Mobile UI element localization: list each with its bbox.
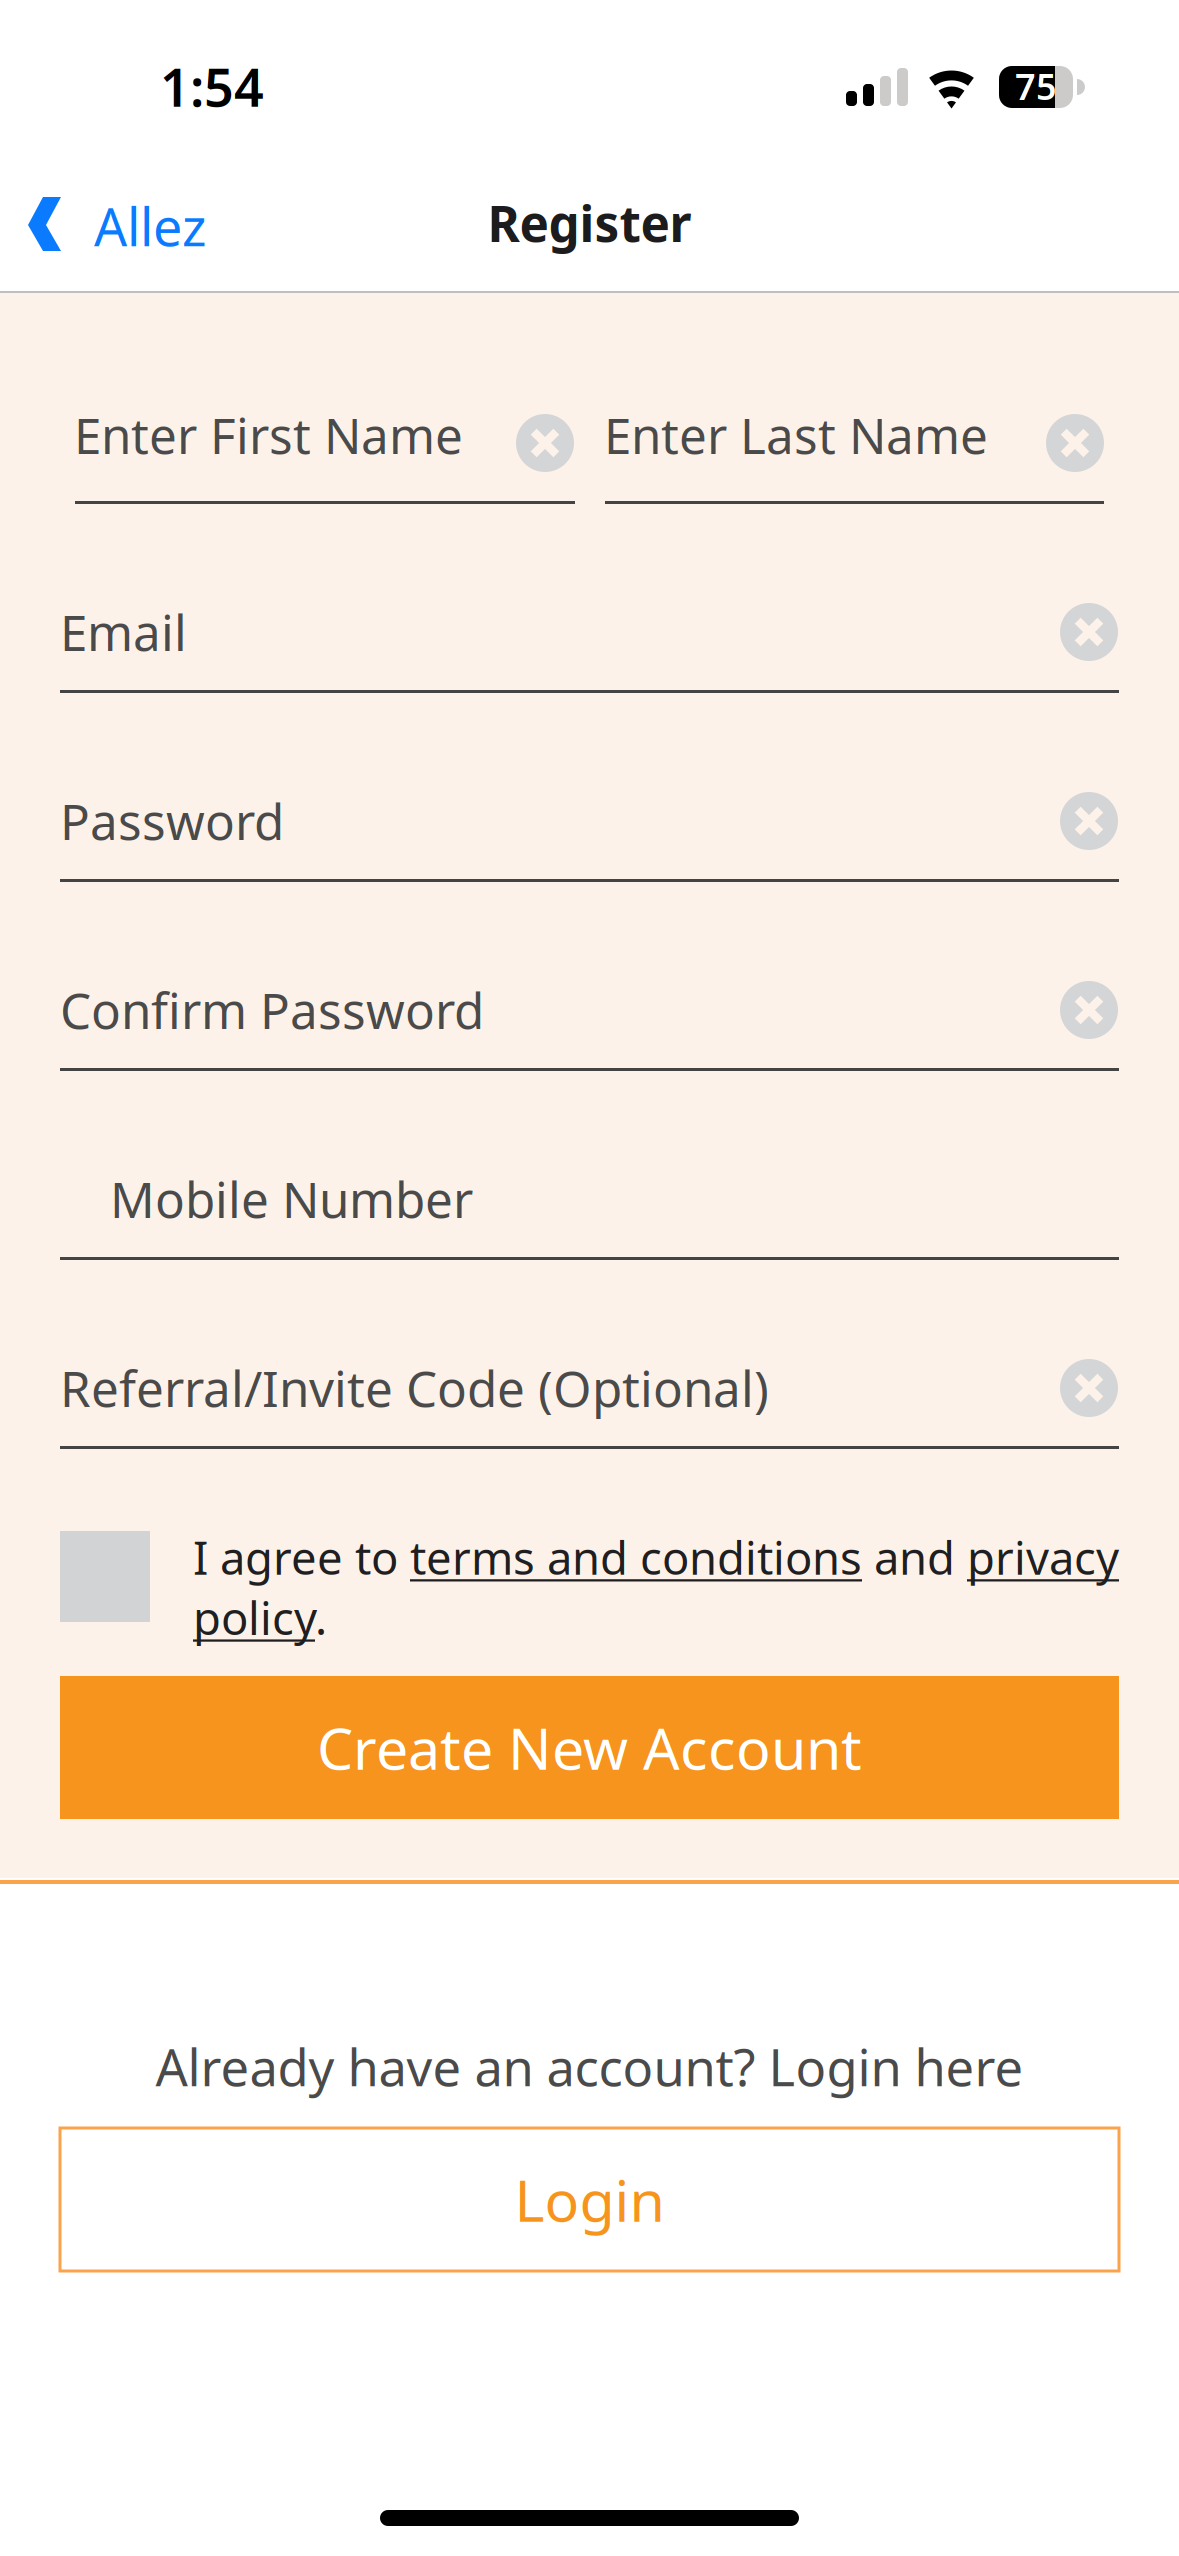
button[interactable]: Clear text: [516, 414, 574, 472]
button[interactable]: Clear text: [1060, 792, 1118, 850]
staticText: Already have an account? Login here: [155, 2033, 1023, 2100]
button[interactable]: Clear text: [1060, 981, 1118, 1039]
staticText: Mobile Number: [110, 1166, 473, 1231]
button[interactable]: Clear text: [1060, 1359, 1118, 1417]
button[interactable]: Login: [60, 2128, 1119, 2271]
staticText: Email: [60, 599, 187, 664]
button[interactable]: Clear text: [1046, 414, 1104, 472]
staticText: 1:54: [160, 52, 264, 121]
staticText: Confirm Password: [60, 977, 484, 1042]
staticText: Enter First Name: [74, 402, 463, 467]
staticText: Referral/Invite Code (Optional): [60, 1355, 769, 1420]
staticText: Allez: [94, 191, 206, 261]
staticText: Enter Last Name: [604, 402, 988, 467]
staticText: I agree to terms and conditions and priv…: [193, 1527, 1119, 1647]
button[interactable]: Create New Account: [60, 1676, 1119, 1819]
staticText: Password: [60, 788, 284, 853]
staticText: Create New Account: [317, 1709, 862, 1785]
button[interactable]: Clear text: [1060, 603, 1118, 661]
button[interactable]: Allez: [0, 175, 228, 275]
staticText: Login: [514, 2161, 664, 2237]
button[interactable]: I agree to terms and conditions and priv…: [60, 1531, 1119, 1651]
staticText: Register: [487, 190, 691, 255]
staticText: 75: [1015, 62, 1057, 110]
